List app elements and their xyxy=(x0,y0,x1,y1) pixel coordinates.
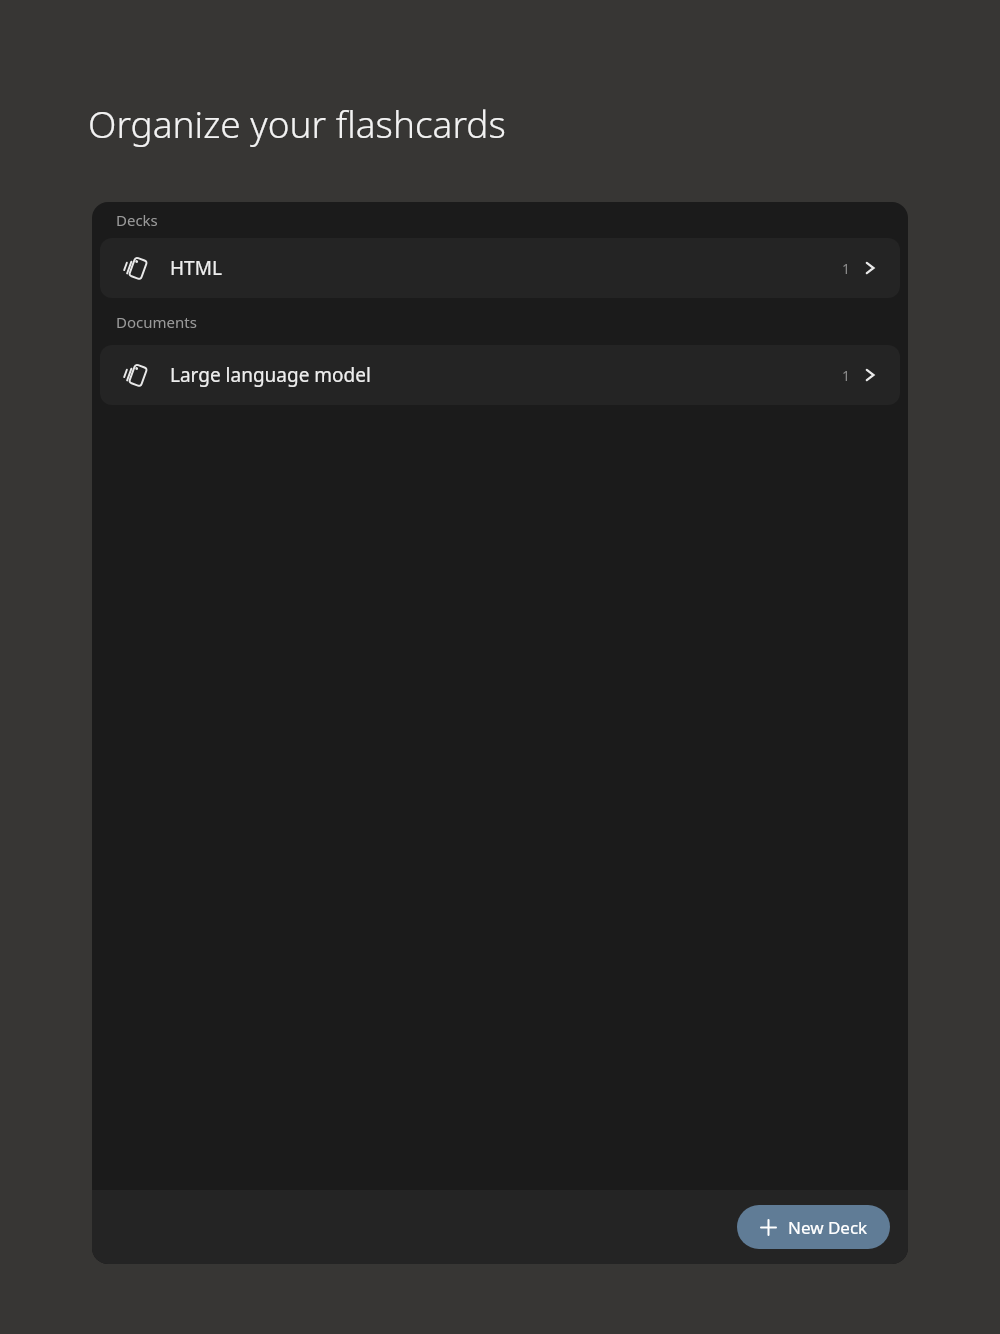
staticText: HTML xyxy=(170,255,841,281)
button[interactable]: New Deck xyxy=(737,1205,890,1249)
button[interactable]: HTML xyxy=(100,238,900,298)
staticText: 1 xyxy=(841,259,850,278)
staticText: 1 xyxy=(841,366,850,385)
staticText: Documents xyxy=(116,312,197,332)
staticText: Large language model xyxy=(170,362,841,388)
button[interactable]: Large language model xyxy=(100,345,900,405)
staticText: Decks xyxy=(116,210,158,230)
staticText: New Deck xyxy=(788,1216,868,1239)
staticText: Organize your flashcards xyxy=(88,98,506,148)
